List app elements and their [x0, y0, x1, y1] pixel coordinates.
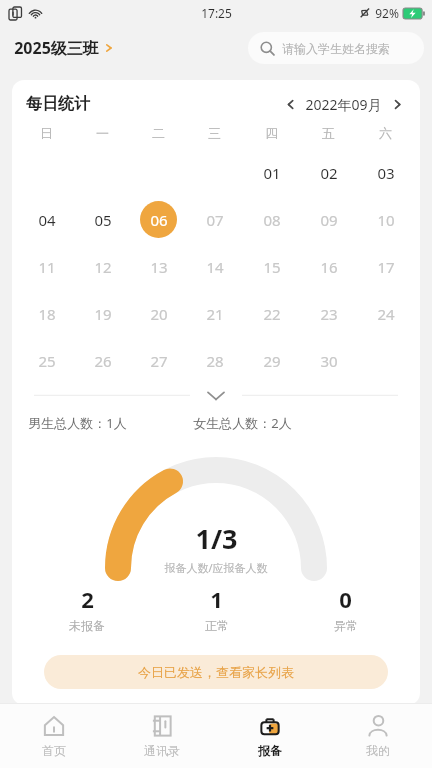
staticText: 女生总人数：2人	[193, 414, 292, 432]
staticText: 18	[38, 304, 56, 324]
staticText: 06	[150, 210, 168, 230]
button[interactable]: 20	[140, 295, 177, 332]
button[interactable]: 今日已发送，查看家长列表	[44, 655, 388, 689]
staticText: 02	[320, 163, 338, 183]
staticText: 三	[208, 125, 221, 141]
staticText: 请输入学生姓名搜索	[282, 41, 390, 56]
staticText: 12	[94, 257, 112, 277]
staticText: 2025级三班	[14, 37, 99, 59]
button[interactable]: 11	[28, 248, 65, 285]
button[interactable]: 21	[196, 295, 233, 332]
button[interactable]: 25	[28, 342, 65, 379]
staticText: 26	[94, 351, 112, 371]
button[interactable]: 30	[310, 342, 347, 379]
staticText: 我的	[366, 743, 390, 758]
button[interactable]: 28	[196, 342, 233, 379]
button[interactable]: Expand calendar	[12, 384, 420, 406]
staticText: 1/3	[195, 520, 238, 557]
button[interactable]: 29	[253, 342, 290, 379]
staticText: 报备人数/应报备人数	[164, 560, 268, 575]
staticText: 20	[150, 304, 168, 324]
staticText: 六	[379, 125, 392, 141]
staticText: 今日已发送，查看家长列表	[138, 664, 294, 680]
staticText: 28	[206, 351, 224, 371]
staticText: 日	[40, 125, 53, 141]
button[interactable]: 22	[253, 295, 290, 332]
staticText: 男生总人数：1人	[28, 414, 127, 432]
button[interactable]: 2025级三班	[0, 33, 122, 63]
staticText: 16	[320, 257, 338, 277]
staticText: 17	[377, 257, 395, 277]
button[interactable]: 10	[367, 201, 404, 238]
staticText: 04	[38, 210, 56, 230]
staticText: 每日统计	[26, 94, 90, 114]
button[interactable]: 01	[253, 154, 290, 191]
button[interactable]: 16	[310, 248, 347, 285]
staticText: 92%	[375, 5, 399, 21]
staticText: 13	[150, 257, 168, 277]
staticText: 19	[94, 304, 112, 324]
button[interactable]: 1	[152, 580, 281, 637]
staticText: 报备	[258, 743, 282, 758]
staticText: 25	[38, 351, 56, 371]
staticText: 03	[377, 163, 395, 183]
button[interactable]: Next month	[386, 93, 408, 115]
staticText: 22	[263, 304, 281, 324]
staticText: 2	[81, 584, 94, 614]
staticText: 一	[96, 125, 109, 141]
button[interactable]: 24	[367, 295, 404, 332]
staticText: 二	[152, 125, 165, 141]
button[interactable]: 23	[310, 295, 347, 332]
button[interactable]: 18	[28, 295, 65, 332]
staticText: 29	[263, 351, 281, 371]
button[interactable]: 我的	[324, 704, 432, 768]
button[interactable]: 12	[84, 248, 121, 285]
button[interactable]: 09	[310, 201, 347, 238]
button[interactable]: 17	[367, 248, 404, 285]
staticText: 未报备	[69, 618, 105, 633]
staticText: 1	[210, 584, 223, 614]
staticText: 14	[206, 257, 224, 277]
staticText: 异常	[334, 618, 358, 633]
button[interactable]: 26	[84, 342, 121, 379]
button[interactable]: 27	[140, 342, 177, 379]
button[interactable]: 08	[253, 201, 290, 238]
button[interactable]: 首页	[0, 704, 108, 768]
button[interactable]: Previous month	[279, 93, 301, 115]
button[interactable]: 19	[84, 295, 121, 332]
staticText: 17:25	[201, 5, 232, 21]
button[interactable]: 03	[367, 154, 404, 191]
staticText: 30	[320, 351, 338, 371]
staticText: 10	[377, 210, 395, 230]
staticText: 09	[320, 210, 338, 230]
staticText: 27	[150, 351, 168, 371]
staticText: 23	[320, 304, 338, 324]
staticText: 15	[263, 257, 281, 277]
button[interactable]: 04	[28, 201, 65, 238]
button[interactable]: 05	[84, 201, 121, 238]
button[interactable]: 报备	[216, 704, 324, 768]
button[interactable]: 13	[140, 248, 177, 285]
button[interactable]: 2	[22, 580, 152, 637]
staticText: 0	[339, 584, 352, 614]
staticText: 01	[263, 163, 281, 183]
staticText: 正常	[205, 618, 229, 633]
staticText: 2022年09月	[305, 95, 382, 114]
staticText: 05	[94, 210, 112, 230]
staticText: 24	[377, 304, 395, 324]
staticText: 五	[322, 125, 335, 141]
staticText: 11	[38, 257, 56, 277]
staticText: 07	[206, 210, 224, 230]
button[interactable]: 0	[281, 580, 410, 637]
staticText: 通讯录	[144, 743, 180, 758]
button[interactable]: 02	[310, 154, 347, 191]
button[interactable]: 请输入学生姓名搜索	[248, 32, 424, 64]
button[interactable]: 14	[196, 248, 233, 285]
staticText: 21	[206, 304, 224, 324]
staticText: 首页	[42, 743, 66, 758]
button[interactable]: 07	[196, 201, 233, 238]
button[interactable]: 通讯录	[108, 704, 216, 768]
staticText: 四	[265, 125, 278, 141]
button[interactable]: 15	[253, 248, 290, 285]
button[interactable]: 06	[140, 201, 177, 238]
